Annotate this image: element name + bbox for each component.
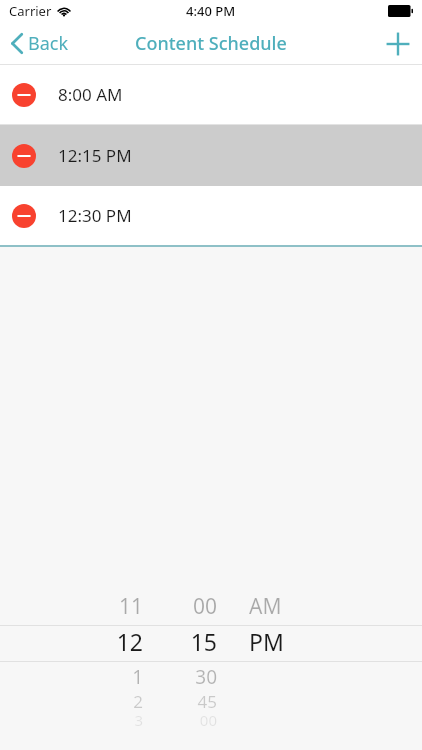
staticText: Back (28, 31, 69, 56)
staticText: 12:30 PM (58, 204, 132, 227)
button[interactable]: Back (0, 22, 79, 65)
staticText: AM (249, 592, 309, 621)
staticText: 45 (157, 690, 217, 713)
button[interactable]: Delete 8:00 AM (12, 83, 36, 107)
button[interactable]: Delete 12:15 PM (12, 144, 36, 168)
staticText: Carrier (9, 2, 52, 20)
button[interactable]: Delete 12:15 PM (0, 125, 422, 186)
staticText: 4:40 PM (186, 2, 236, 20)
staticText: 00 (157, 710, 217, 730)
staticText: 11 (83, 592, 143, 621)
staticText: 12 (83, 626, 143, 657)
staticText: 2 (83, 690, 143, 713)
staticText: 15 (157, 626, 217, 657)
button[interactable]: Add time (374, 22, 422, 65)
button[interactable]: Delete 12:30 PM (12, 204, 36, 228)
staticText: 8:00 AM (58, 83, 123, 106)
staticText: PM (249, 626, 309, 657)
staticText: 12:15 PM (58, 144, 132, 167)
button[interactable]: Delete 8:00 AM (0, 65, 422, 124)
staticText: 1 (83, 664, 143, 690)
staticText: 30 (157, 664, 217, 690)
staticText: Content Schedule (135, 31, 287, 56)
button[interactable]: Delete 12:30 PM (0, 186, 422, 245)
staticText: 00 (157, 592, 217, 621)
